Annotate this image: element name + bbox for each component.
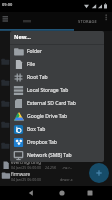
- staticText: 04 Jan/25 06:00:00: [11, 165, 42, 170]
- staticText: Folder: [27, 48, 42, 55]
- staticText: Google Drive Tab: [27, 113, 68, 120]
- button[interactable]: Google Drive Tab: [10, 110, 104, 123]
- button[interactable]: Network (SMB) Tab: [10, 149, 104, 162]
- staticText: 09:00: [2, 2, 13, 7]
- staticText: STORAGE: [78, 19, 97, 24]
- button[interactable]: Local Storage Tab: [10, 84, 104, 97]
- button[interactable]: Root Tab: [10, 71, 104, 84]
- staticText: firmware: [11, 171, 31, 177]
- button[interactable]: Dropbox Tab: [10, 136, 104, 149]
- button[interactable]: [52, 186, 72, 200]
- button[interactable]: firmware: [0, 169, 86, 183]
- button[interactable]: [80, 186, 100, 200]
- staticText: Local Storage Tab: [27, 87, 69, 94]
- staticText: External SD Card Tab: [27, 100, 76, 107]
- button[interactable]: Box Tab: [10, 123, 104, 136]
- staticText: Root Tab: [27, 74, 48, 81]
- staticText: Dropbox Tab: [27, 139, 57, 146]
- button[interactable]: [102, 12, 112, 29]
- button[interactable]: External SD Card Tab: [10, 97, 104, 110]
- button[interactable]: Folder: [10, 45, 104, 58]
- staticText: drwxr-x: [60, 177, 73, 182]
- staticText: even.high.img: [11, 159, 42, 165]
- staticText: File: [27, 61, 35, 68]
- button[interactable]: [21, 186, 41, 200]
- staticText: 04 Jan/25 06:00:00: [11, 177, 42, 182]
- button[interactable]: [74, 12, 102, 31]
- button[interactable]: [0, 12, 12, 29]
- staticText: Box Tab: [27, 126, 46, 133]
- button[interactable]: File: [10, 58, 104, 71]
- button[interactable]: [89, 163, 109, 183]
- staticText: 24.25K: [45, 165, 57, 170]
- staticText: New...: [14, 33, 31, 40]
- staticText: Network (SMB) Tab: [27, 152, 72, 159]
- staticText: -rw-r--: [62, 165, 73, 170]
- button[interactable]: [12, 12, 74, 31]
